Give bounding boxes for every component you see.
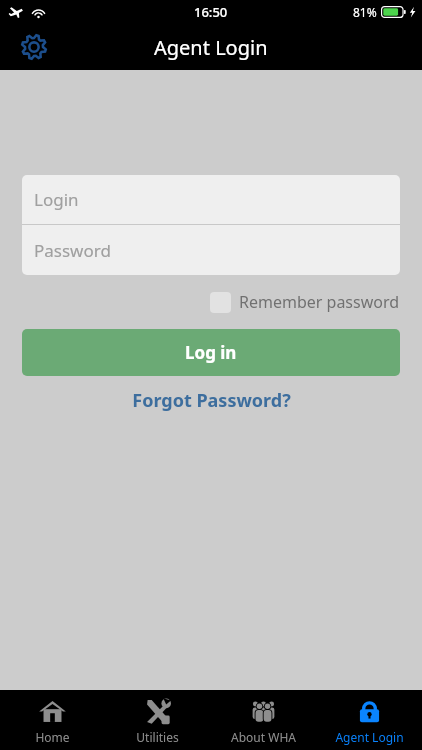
- button[interactable]: Remember password: [210, 289, 400, 315]
- staticText: Remember password: [239, 291, 400, 313]
- button[interactable]: Settings: [12, 25, 56, 69]
- button[interactable]: Forgot Password?: [22, 388, 400, 413]
- button[interactable]: Log in: [22, 329, 400, 376]
- staticText: Agent Login: [335, 729, 404, 745]
- staticText: Agent Login: [154, 34, 268, 61]
- staticText: Home: [35, 729, 70, 745]
- button[interactable]: Home: [0, 690, 105, 750]
- staticText: 16:50: [194, 3, 228, 21]
- staticText: Log in: [185, 341, 237, 364]
- button[interactable]: Agent Login: [316, 690, 422, 750]
- button[interactable]: Password: [22, 225, 400, 275]
- button[interactable]: Login: [22, 175, 400, 224]
- staticText: Password: [34, 239, 111, 262]
- staticText: About WHA: [231, 729, 296, 745]
- staticText: Utilities: [136, 729, 179, 745]
- button[interactable]: About WHA: [210, 690, 316, 750]
- staticText: 81%: [353, 4, 377, 20]
- staticText: Forgot Password?: [132, 388, 291, 413]
- staticText: Login: [34, 188, 79, 211]
- button[interactable]: Utilities: [105, 690, 210, 750]
